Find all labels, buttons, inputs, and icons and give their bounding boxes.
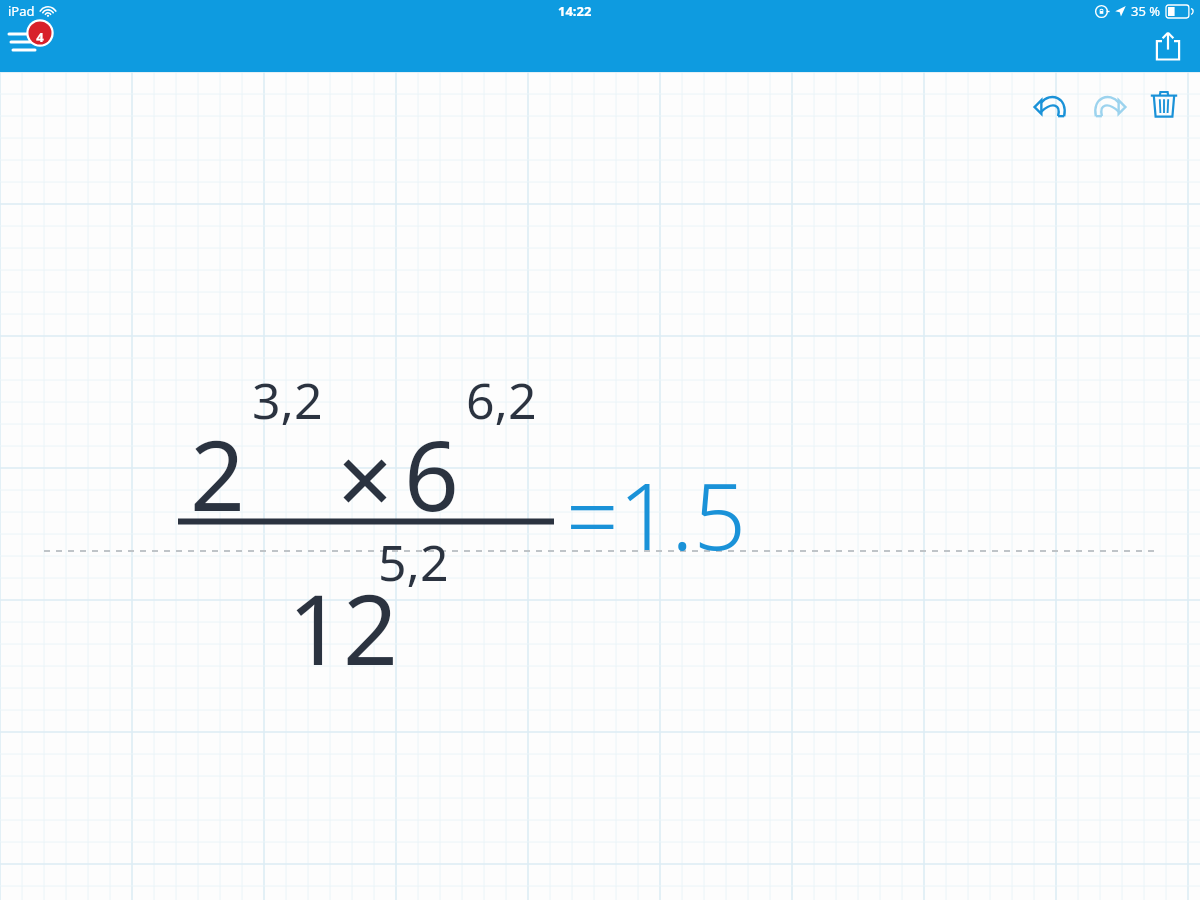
staticText: 2 (190, 408, 245, 539)
staticText: 14:22 (558, 2, 592, 20)
staticText: iPad (8, 2, 35, 20)
button[interactable]: Share (1144, 22, 1192, 70)
staticText: 6,2 (466, 366, 537, 434)
staticText: =1.5 (566, 452, 747, 577)
button[interactable]: Undo (1024, 76, 1080, 132)
staticText: 4 (36, 28, 44, 46)
staticText: 6 (404, 408, 459, 539)
staticText: 5,2 (378, 528, 449, 596)
button[interactable]: Redo (1080, 76, 1136, 132)
button[interactable]: Delete (1136, 76, 1192, 132)
button[interactable]: Menu (4, 16, 56, 68)
staticText: 12 (288, 562, 398, 693)
staticText: 35 % (1131, 2, 1161, 20)
staticText: 3,2 (252, 366, 323, 434)
